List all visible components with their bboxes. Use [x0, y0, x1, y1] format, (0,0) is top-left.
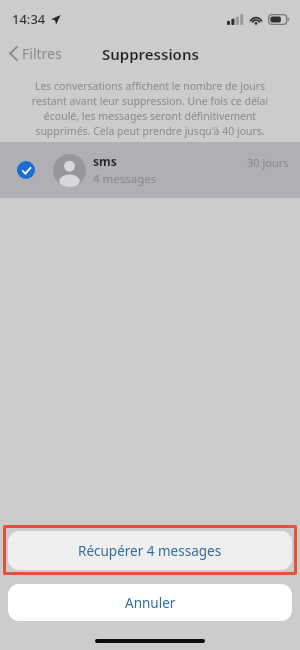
staticText: Récupérer 4 messages — [78, 542, 222, 560]
staticText: Les conversations affichent le nombre de… — [20, 79, 280, 138]
staticText: Filtres — [22, 44, 62, 63]
button[interactable]: Récupérer 4 messages — [8, 531, 292, 570]
staticText: Annuler — [125, 594, 176, 612]
staticText: 4 messages — [93, 171, 157, 187]
staticText: 30 jours — [247, 155, 289, 170]
staticText: Suppressions — [102, 44, 199, 64]
button[interactable]: sms — [0, 142, 300, 198]
button[interactable]: Filtres — [0, 41, 70, 66]
staticText: 14:34 — [12, 10, 46, 28]
button[interactable]: Annuler — [8, 584, 292, 621]
staticText: sms — [93, 153, 117, 169]
